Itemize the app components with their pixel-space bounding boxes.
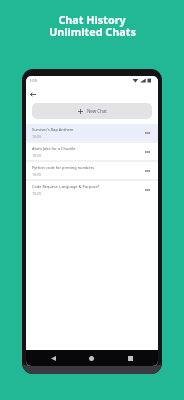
staticText: 10:05 xyxy=(32,172,42,177)
staticText: 1:05 xyxy=(29,78,37,83)
staticText: Code Request: Language & Purpose? xyxy=(32,184,100,189)
staticText: Atom Joke for a Chuckle xyxy=(32,146,76,151)
button[interactable]: More options xyxy=(142,128,152,138)
staticText: New Chat xyxy=(87,108,107,114)
button[interactable]: Atom Joke for a Chuckle xyxy=(26,143,158,160)
staticText: Survivor's Rap Anthem xyxy=(32,127,74,132)
button[interactable]: More options xyxy=(142,185,152,195)
staticText: 10:05 xyxy=(32,153,42,158)
button[interactable]: Home xyxy=(86,353,97,364)
button[interactable]: Code Request: Language & Purpose? xyxy=(26,181,158,198)
button[interactable]: Recents xyxy=(125,353,136,364)
button[interactable]: Python code for printing numbers xyxy=(26,162,158,179)
button[interactable]: Survivor's Rap Anthem xyxy=(26,124,158,141)
staticText: 10:05 xyxy=(32,191,42,196)
button[interactable]: New Chat xyxy=(32,103,152,119)
button[interactable]: Back xyxy=(27,89,38,100)
button[interactable]: Back xyxy=(48,353,59,364)
staticText: Unlimited Chats xyxy=(49,24,136,39)
staticText: Chat History xyxy=(58,12,126,27)
button[interactable]: More options xyxy=(142,166,152,176)
staticText: 10:05 xyxy=(32,134,42,139)
staticText: Python code for printing numbers xyxy=(32,165,95,170)
button[interactable]: More options xyxy=(142,147,152,157)
